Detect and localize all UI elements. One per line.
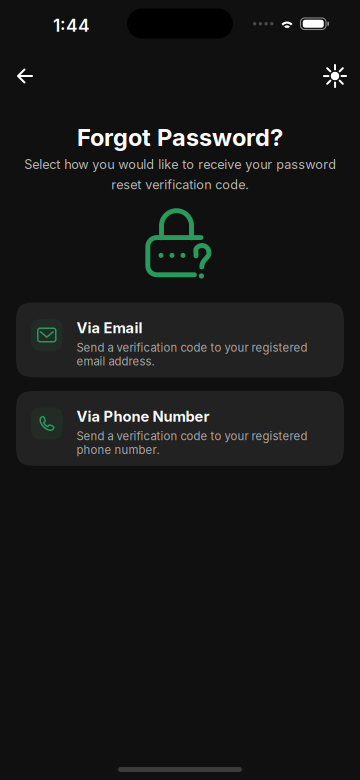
staticText: Forgot Password? [77, 123, 283, 152]
staticText: 1:44 [53, 15, 90, 36]
button[interactable]: Via Email [16, 302, 344, 377]
button[interactable]: Back [7, 58, 43, 94]
button[interactable]: Via Phone Number [16, 391, 344, 466]
staticText: Send a verification code to your registe… [76, 429, 307, 457]
button[interactable]: Switch to light mode [313, 54, 357, 98]
staticText: Via Email [76, 319, 142, 337]
staticText: Select how you would like to receive you… [24, 157, 336, 192]
staticText: Via Phone Number [76, 407, 209, 425]
staticText: Send a verification code to your registe… [76, 341, 307, 368]
